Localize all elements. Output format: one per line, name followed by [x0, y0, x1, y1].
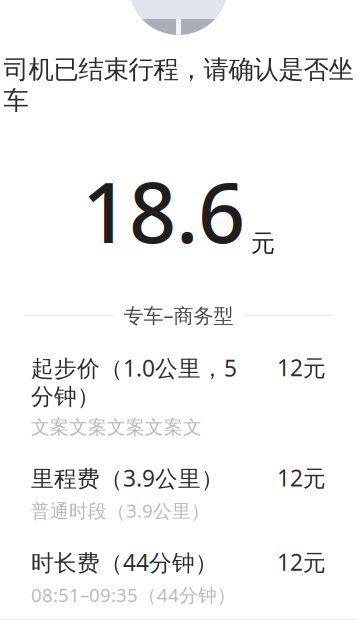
staticText: 里程费（3.9公里）	[31, 463, 224, 493]
staticText: 18.6	[82, 156, 245, 266]
staticText: 普通时段（3.9公里）	[31, 498, 210, 523]
staticText: 12元	[277, 352, 326, 383]
staticText: 元	[251, 228, 275, 258]
staticText: 文案文案文案文案文	[31, 416, 202, 439]
staticText: 专车–商务型	[123, 302, 233, 328]
staticText: 12元	[277, 547, 326, 577]
staticText: 时长费（44分钟）	[31, 547, 218, 577]
staticText: 12元	[277, 463, 326, 493]
staticText: 司机已结束行程，请确认是否坐车	[3, 54, 353, 116]
staticText: 起步价（1.0公里，5分钟）	[31, 353, 237, 411]
staticText: 08:51–09:35（44分钟）	[31, 582, 236, 607]
